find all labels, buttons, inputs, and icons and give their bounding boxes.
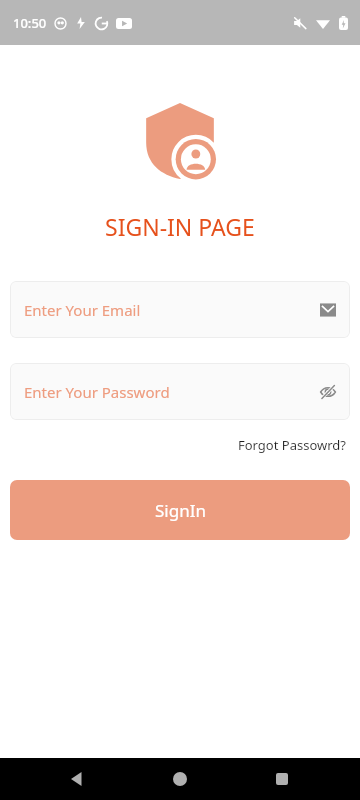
staticText: Enter Your Email: [24, 300, 141, 320]
button[interactable]: Back: [54, 758, 102, 800]
staticText: 10:50: [13, 14, 47, 32]
button[interactable]: Toggle password visibility: [320, 384, 336, 400]
staticText: SignIn: [155, 499, 206, 522]
button[interactable]: Email: [320, 302, 336, 318]
button[interactable]: Enter Your Password: [10, 363, 350, 420]
staticText: Forgot Passowrd?: [238, 436, 346, 454]
button[interactable]: Forgot Passowrd?: [236, 434, 348, 456]
staticText: Enter Your Password: [24, 382, 170, 402]
button[interactable]: Recent apps: [258, 758, 306, 800]
staticText: SIGN-IN PAGE: [105, 211, 255, 242]
button[interactable]: SignIn: [10, 480, 350, 540]
button[interactable]: Home: [156, 758, 204, 800]
button[interactable]: Enter Your Email: [10, 281, 350, 338]
